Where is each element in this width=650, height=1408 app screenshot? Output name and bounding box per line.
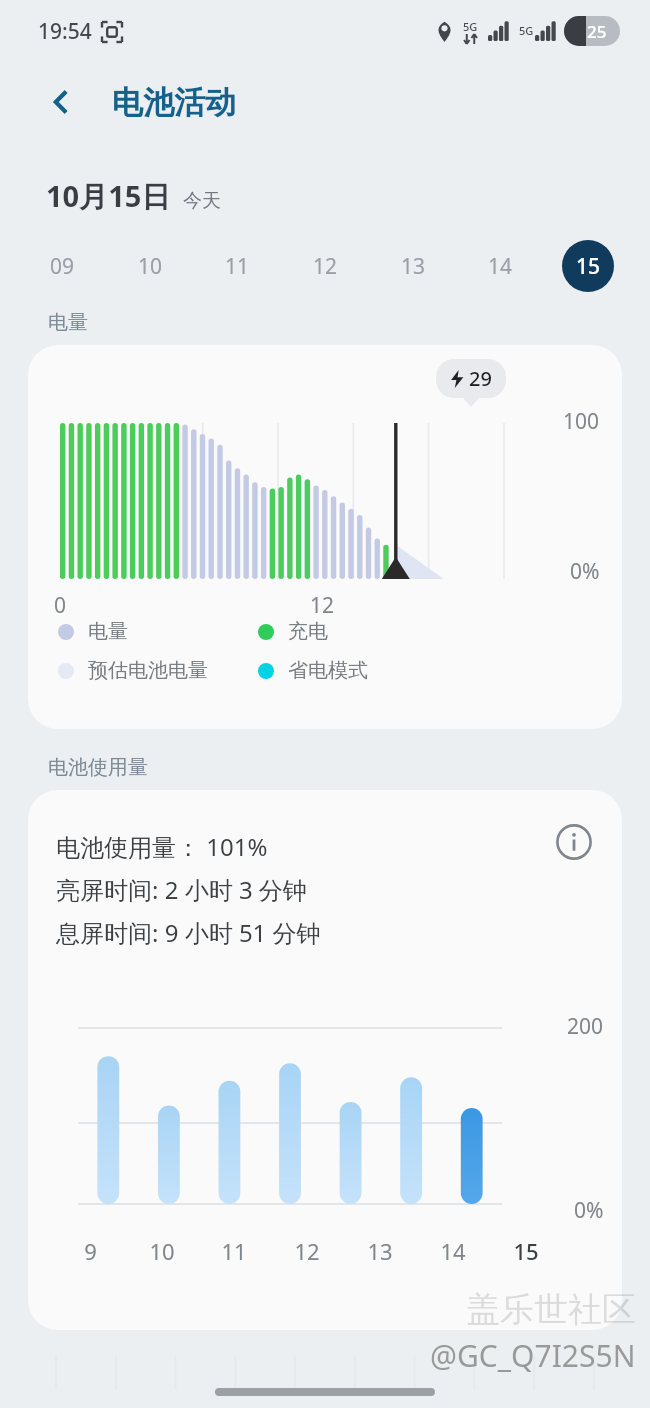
staticText: 0 — [54, 591, 67, 620]
button[interactable]: 14 — [474, 240, 526, 292]
button[interactable]: 信息 — [548, 816, 600, 868]
staticText: 电量 — [48, 310, 88, 335]
staticText: 12 — [310, 591, 335, 620]
button[interactable]: 15 — [562, 240, 614, 292]
staticText: 200 — [567, 1012, 604, 1041]
staticText: 13 — [401, 252, 426, 281]
staticText: 充电 — [288, 619, 328, 644]
staticText: 11 — [225, 252, 250, 281]
staticText: 14 — [440, 1236, 466, 1266]
staticText: @GC_Q7I2S5N — [430, 1335, 636, 1376]
staticText: 100 — [563, 407, 600, 436]
button[interactable]: 09 — [36, 240, 88, 292]
staticText: 12 — [294, 1236, 320, 1266]
button[interactable]: 100 — [28, 345, 622, 729]
staticText: 0% — [574, 1196, 604, 1225]
staticText: 亮屏时间: 2 小时 3 分钟 — [56, 873, 307, 906]
staticText: 29 — [469, 365, 492, 392]
staticText: 省电模式 — [288, 658, 368, 683]
staticText: 电池使用量： 101% — [56, 830, 268, 863]
staticText: 14 — [488, 252, 513, 281]
button[interactable]: 13 — [387, 240, 439, 292]
staticText: 5G — [463, 19, 478, 34]
staticText: 12 — [313, 252, 338, 281]
staticText: 15 — [576, 252, 601, 281]
button[interactable]: 返回 — [34, 74, 90, 130]
button[interactable]: 11 — [211, 240, 263, 292]
staticText: 11 — [221, 1236, 247, 1266]
staticText: 电池使用量 — [48, 755, 148, 780]
staticText: 今天 — [183, 189, 221, 213]
staticText: 电池活动 — [112, 83, 236, 122]
staticText: 09 — [50, 252, 75, 281]
button[interactable]: 电池使用量： 101% — [28, 790, 622, 1330]
staticText: 13 — [367, 1236, 393, 1266]
staticText: 预估电池电量 — [88, 658, 208, 683]
staticText: 10 — [138, 252, 163, 281]
staticText: 10月15日 — [46, 176, 171, 216]
staticText: 25 — [587, 20, 607, 43]
staticText: 息屏时间: 9 小时 51 分钟 — [56, 916, 321, 949]
staticText: 15 — [513, 1236, 539, 1266]
button[interactable]: 12 — [299, 240, 351, 292]
staticText: 9 — [84, 1236, 97, 1266]
staticText: 10 — [149, 1236, 175, 1266]
button[interactable]: 10 — [124, 240, 176, 292]
staticText: 5G — [519, 23, 534, 38]
staticText: 盖乐世社区 — [466, 1288, 636, 1331]
staticText: 19:54 — [38, 17, 92, 46]
staticText: 0% — [570, 557, 600, 586]
staticText: 电量 — [88, 619, 128, 644]
